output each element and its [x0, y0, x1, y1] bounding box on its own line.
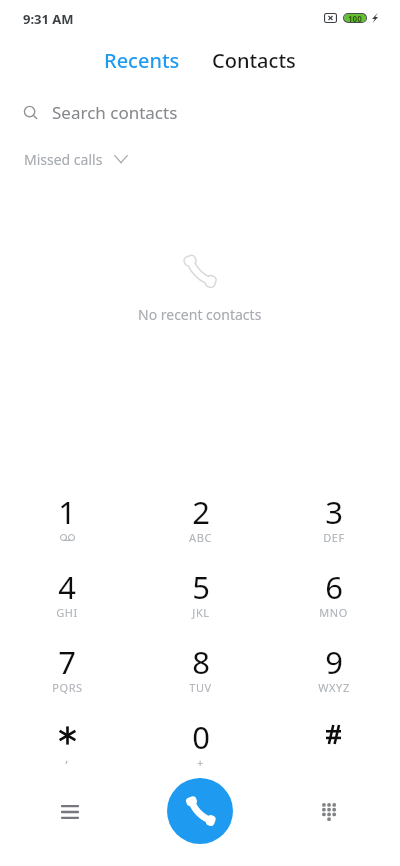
staticText: 3: [325, 491, 343, 533]
button[interactable]: Search contacts: [0, 90, 400, 134]
button[interactable]: Menu: [48, 790, 92, 834]
button[interactable]: Recents: [92, 42, 192, 78]
staticText: 2: [192, 491, 210, 533]
staticText: TUV: [189, 680, 212, 695]
staticText: JKL: [192, 605, 210, 620]
staticText: ,: [65, 748, 69, 766]
staticText: MNO: [319, 605, 348, 620]
button[interactable]: 4: [0, 554, 134, 629]
button[interactable]: Missed calls: [0, 140, 142, 178]
staticText: +: [197, 755, 204, 770]
staticText: Contacts: [212, 47, 296, 74]
staticText: 1: [58, 491, 76, 533]
staticText: ABC: [189, 530, 212, 545]
staticText: 8: [192, 641, 210, 683]
button[interactable]: 7: [0, 629, 134, 704]
button[interactable]: Dialpad: [307, 790, 351, 834]
button[interactable]: Call: [167, 778, 233, 844]
staticText: WXYZ: [318, 680, 350, 695]
staticText: 9:31 AM: [23, 10, 74, 28]
staticText: No recent contacts: [138, 305, 262, 324]
staticText: 100: [348, 13, 362, 23]
staticText: 6: [325, 566, 343, 608]
button[interactable]: 0: [134, 704, 267, 779]
button[interactable]: Contacts: [204, 42, 304, 78]
staticText: GHI: [56, 605, 78, 620]
button[interactable]: 8: [134, 629, 267, 704]
staticText: Missed calls: [24, 150, 103, 169]
button[interactable]: 1: [0, 479, 134, 554]
staticText: Recents: [104, 47, 180, 74]
staticText: Search contacts: [52, 101, 178, 124]
button[interactable]: 2: [134, 479, 267, 554]
button[interactable]: 6: [267, 554, 400, 629]
button[interactable]: [267, 704, 400, 779]
button[interactable]: 5: [134, 554, 267, 629]
staticText: 9: [325, 641, 343, 683]
button[interactable]: 3: [267, 479, 400, 554]
button[interactable]: ,: [0, 704, 134, 779]
staticText: 0: [192, 716, 210, 758]
staticText: 5: [192, 566, 210, 608]
button[interactable]: 9: [267, 629, 400, 704]
staticText: 4: [58, 566, 76, 608]
staticText: PQRS: [52, 680, 83, 695]
staticText: 7: [58, 641, 76, 683]
staticText: DEF: [323, 530, 345, 545]
